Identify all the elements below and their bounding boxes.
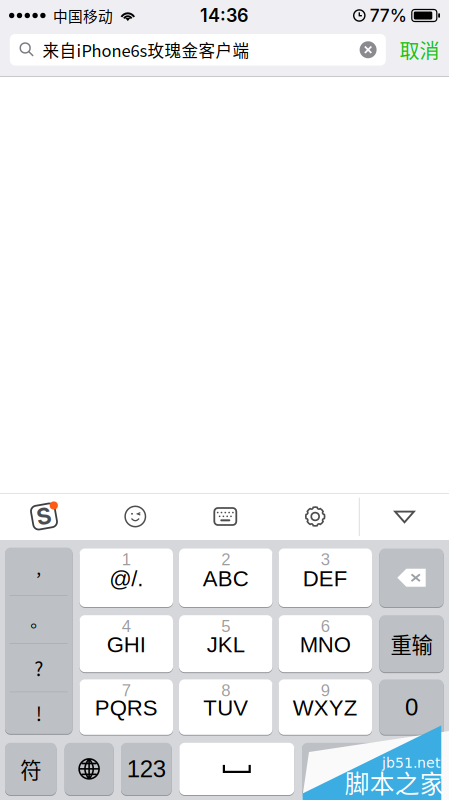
staticText: 来自iPhone6s玫瑰金客户端 (42, 38, 249, 62)
staticText: jb51.net (382, 755, 440, 771)
button[interactable]: , (5, 548, 72, 595)
staticText: 2 (221, 550, 230, 569)
staticText: 脚本之家 (345, 764, 445, 800)
button[interactable]: 9 (278, 678, 372, 736)
button[interactable]: 重输 (379, 614, 443, 673)
staticText: 0 (405, 694, 418, 720)
staticText: PQRS (95, 695, 158, 720)
staticText: @/. (109, 566, 143, 591)
staticText: 1 (122, 550, 131, 569)
staticText: 9 (321, 681, 330, 700)
button[interactable]: 。 (5, 595, 72, 644)
button[interactable]: 4 (79, 614, 173, 673)
button[interactable]: 0 (379, 678, 443, 736)
button[interactable]: Sogou input method (0, 494, 88, 539)
button[interactable]: 来自iPhone6s玫瑰金客户端 (10, 34, 386, 65)
button[interactable]: 5 (179, 614, 272, 673)
staticText: 123 (127, 755, 166, 782)
button[interactable]: Space (179, 742, 294, 796)
button[interactable]: 1 (79, 548, 173, 608)
button[interactable]: 2 (179, 548, 272, 608)
staticText: 14:36 (200, 5, 249, 26)
staticText: S (36, 502, 51, 530)
button[interactable]: 符 (5, 742, 56, 796)
button[interactable]: 8 (179, 678, 272, 736)
staticText: ! (36, 699, 42, 727)
staticText: 符 (20, 753, 41, 784)
staticText: 8 (221, 681, 230, 700)
button[interactable]: Delete (379, 548, 443, 608)
staticText: 。 (30, 607, 47, 633)
button[interactable]: 取消 (391, 32, 447, 68)
button[interactable]: Emoji (91, 494, 179, 539)
staticText: ? (34, 654, 43, 682)
staticText: GHI (107, 632, 146, 657)
staticText: 中国移动 (53, 5, 113, 26)
staticText: WXYZ (293, 695, 358, 720)
button[interactable]: Hide keyboard (361, 494, 447, 539)
staticText: MNO (300, 632, 351, 657)
button[interactable]: ! (5, 692, 72, 734)
button[interactable]: Return (302, 742, 444, 796)
button[interactable]: 7 (79, 678, 173, 736)
staticText: ABC (203, 566, 249, 591)
staticText: TUV (203, 695, 248, 720)
button[interactable]: 3 (278, 548, 372, 608)
button[interactable]: Switch input language (65, 742, 113, 796)
staticText: 5 (221, 617, 230, 635)
staticText: 重输 (390, 628, 432, 659)
button[interactable]: Settings (271, 494, 359, 539)
staticText: JKL (207, 632, 245, 657)
button[interactable]: 123 (121, 742, 172, 796)
staticText: DEF (303, 566, 348, 591)
button[interactable]: Switch keyboard layout (181, 494, 269, 539)
staticText: 3 (321, 550, 330, 569)
button[interactable]: ? (5, 644, 72, 692)
staticText: 7 (122, 681, 131, 700)
staticText: , (36, 555, 41, 580)
staticText: 77% (370, 5, 407, 26)
staticText: 6 (321, 617, 330, 635)
staticText: 4 (122, 617, 131, 635)
staticText: 取消 (399, 35, 439, 64)
button[interactable]: 6 (278, 614, 372, 673)
